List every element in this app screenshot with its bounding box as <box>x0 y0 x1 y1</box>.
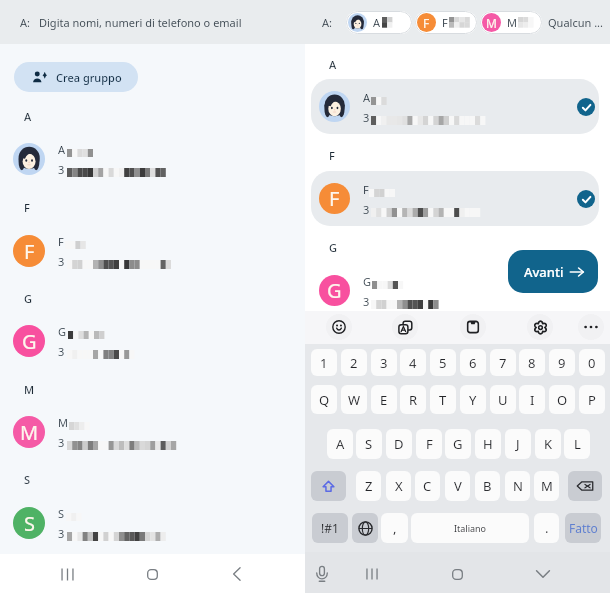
staticText: S <box>58 506 65 521</box>
button[interactable]: U <box>490 385 516 414</box>
button[interactable]: F <box>415 11 477 34</box>
staticText: B <box>483 477 492 495</box>
button[interactable]: Emoji <box>326 314 352 340</box>
button[interactable]: Recents <box>351 556 393 592</box>
button[interactable]: 7 <box>490 349 516 376</box>
button[interactable]: Translate <box>392 314 418 340</box>
button[interactable]: X <box>386 471 411 501</box>
other: Selected <box>577 98 595 116</box>
button[interactable]: F <box>0 222 305 280</box>
button[interactable]: 6 <box>460 349 486 376</box>
button[interactable]: M <box>480 11 542 34</box>
button[interactable]: T <box>430 385 456 414</box>
button[interactable]: F <box>416 429 442 459</box>
button[interactable]: Hide keyboard <box>522 556 564 592</box>
button[interactable]: A <box>0 130 305 188</box>
button[interactable]: 2 <box>341 349 367 376</box>
staticText: H <box>483 435 493 453</box>
button[interactable]: B <box>475 471 500 501</box>
button[interactable]: 5 <box>430 349 456 376</box>
staticText: 7 <box>499 354 507 372</box>
button[interactable]: J <box>505 429 531 459</box>
button[interactable]: 3 <box>371 349 397 376</box>
button[interactable]: S <box>0 494 305 552</box>
button[interactable]: Italiano <box>411 513 529 543</box>
button[interactable]: Settings <box>527 314 553 340</box>
staticText: A: <box>322 15 332 30</box>
button[interactable]: Home <box>436 556 478 592</box>
staticText: N <box>513 477 523 495</box>
staticText: D <box>394 435 404 453</box>
button[interactable]: Backspace <box>568 471 602 501</box>
button[interactable]: . <box>534 513 559 543</box>
button[interactable]: Back <box>215 555 259 593</box>
staticText: 6 <box>469 354 477 372</box>
button[interactable]: More options <box>578 314 604 340</box>
button[interactable]: M <box>534 471 559 501</box>
staticText: G <box>22 328 37 355</box>
staticText: 1 <box>320 354 328 372</box>
button[interactable]: W <box>341 385 367 414</box>
button[interactable]: Voice input <box>301 556 343 592</box>
button[interactable]: G <box>311 263 599 318</box>
staticText: Y <box>469 391 477 409</box>
button[interactable]: 0 <box>579 349 605 376</box>
button[interactable]: A <box>327 429 353 459</box>
button[interactable]: K <box>535 429 561 459</box>
button[interactable]: S <box>356 429 382 459</box>
staticText: P <box>588 391 596 409</box>
staticText: X <box>395 477 403 495</box>
staticText: M <box>486 15 497 31</box>
staticText: U <box>498 391 508 409</box>
button[interactable]: D <box>386 429 412 459</box>
button[interactable]: 9 <box>549 349 575 376</box>
button[interactable]: Clipboard <box>460 314 486 340</box>
button[interactable]: R <box>400 385 426 414</box>
button[interactable]: I <box>519 385 545 414</box>
staticText: A <box>58 142 66 157</box>
button[interactable]: N <box>505 471 530 501</box>
button[interactable]: Language <box>352 513 378 543</box>
button[interactable]: Avanti <box>508 250 598 293</box>
staticText: 8 <box>528 354 536 372</box>
button[interactable]: , <box>381 513 408 543</box>
button[interactable]: 1 <box>311 349 337 376</box>
staticText: F <box>24 200 30 215</box>
button[interactable]: Shift <box>311 471 346 501</box>
staticText: S <box>24 510 35 537</box>
staticText: , <box>393 519 397 537</box>
staticText: F <box>329 185 340 212</box>
button[interactable]: F <box>311 171 599 226</box>
button[interactable]: A <box>346 11 412 34</box>
button[interactable]: 8 <box>519 349 545 376</box>
other: Selected <box>577 190 595 208</box>
button[interactable]: !#1 <box>312 513 348 543</box>
staticText: M <box>507 15 517 30</box>
button[interactable]: P <box>579 385 605 414</box>
staticText: 3 <box>58 162 65 177</box>
button[interactable]: 4 <box>400 349 426 376</box>
staticText: M <box>24 382 35 397</box>
staticText: 3 <box>58 526 65 541</box>
button[interactable]: Q <box>311 385 337 414</box>
button[interactable]: V <box>445 471 470 501</box>
staticText: M <box>541 477 553 495</box>
button[interactable]: Home <box>130 555 174 593</box>
button[interactable]: Crea gruppo <box>14 62 138 92</box>
button[interactable]: E <box>371 385 397 414</box>
button[interactable]: H <box>475 429 501 459</box>
button[interactable]: Z <box>356 471 381 501</box>
button[interactable]: G <box>445 429 471 459</box>
button[interactable]: G <box>0 312 305 370</box>
button[interactable]: C <box>415 471 440 501</box>
button[interactable]: Y <box>460 385 486 414</box>
button[interactable]: Recents <box>45 555 89 593</box>
button[interactable]: A: <box>0 0 305 44</box>
staticText: Qualcun ... <box>548 15 603 30</box>
button[interactable]: O <box>549 385 575 414</box>
staticText: 3 <box>380 354 388 372</box>
button[interactable]: M <box>0 403 305 461</box>
button[interactable]: L <box>564 429 590 459</box>
button[interactable]: Fatto <box>565 513 601 543</box>
button[interactable]: A <box>311 79 599 134</box>
